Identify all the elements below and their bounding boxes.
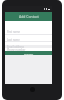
staticText: Phone number xyxy=(7,48,26,52)
staticText: Add Contact xyxy=(19,14,39,19)
staticText: Email address xyxy=(7,45,24,49)
staticText: SUBMIT xyxy=(24,52,34,55)
button[interactable]: Last name xyxy=(5,38,52,42)
button[interactable]: SUBMIT xyxy=(5,51,52,55)
button[interactable]: Email address xyxy=(5,45,52,49)
button[interactable]: Phone number xyxy=(5,48,52,52)
staticText: Last name xyxy=(7,38,20,42)
button[interactable]: First name xyxy=(5,30,52,34)
button[interactable]: Add Contact xyxy=(5,12,52,21)
staticText: First name xyxy=(7,30,20,34)
